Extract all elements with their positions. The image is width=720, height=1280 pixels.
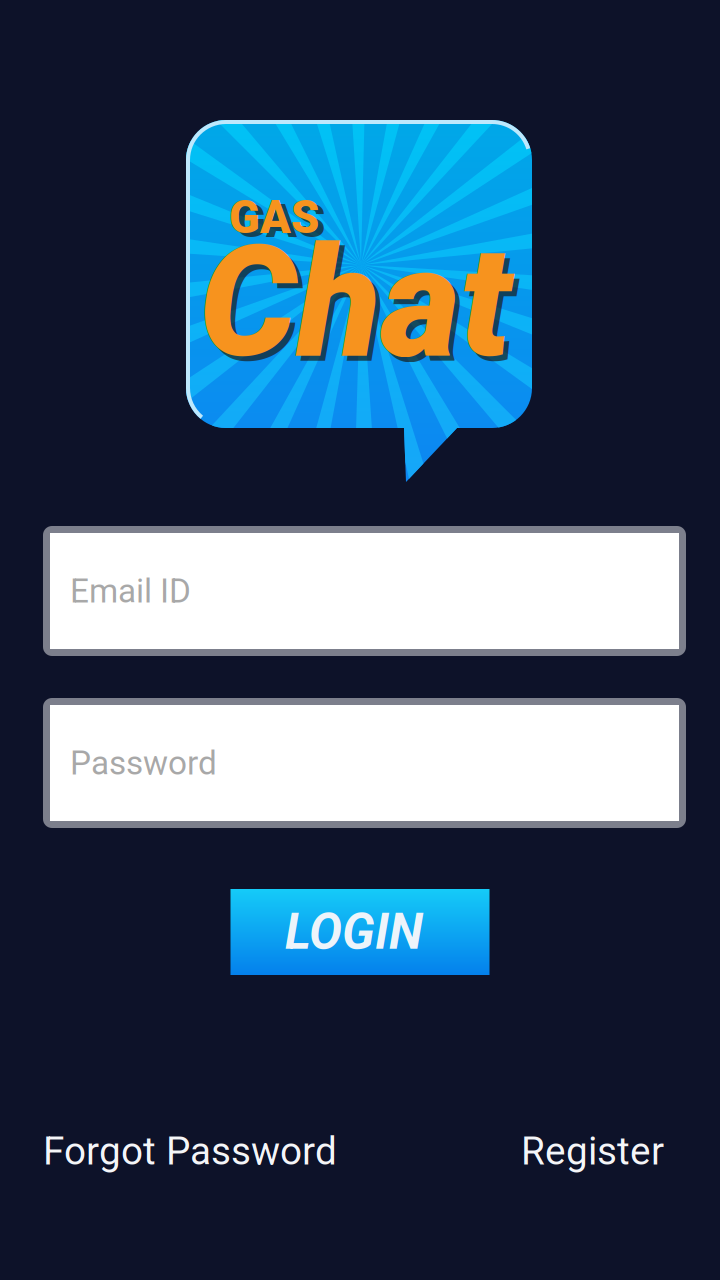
staticText: Password xyxy=(70,743,217,783)
staticText: LOGIN xyxy=(285,903,423,961)
staticText: Forgot Password xyxy=(43,1129,337,1174)
staticText: GAS xyxy=(229,191,319,244)
button[interactable]: LOGIN xyxy=(230,889,489,975)
button[interactable]: Password xyxy=(43,698,686,828)
button[interactable]: Email ID xyxy=(43,526,686,656)
button[interactable]: Forgot Password xyxy=(43,1129,343,1174)
staticText: Chat xyxy=(199,213,511,393)
button[interactable]: Register xyxy=(514,1129,664,1174)
staticText: Email ID xyxy=(70,571,191,611)
staticText: Register xyxy=(521,1129,664,1174)
